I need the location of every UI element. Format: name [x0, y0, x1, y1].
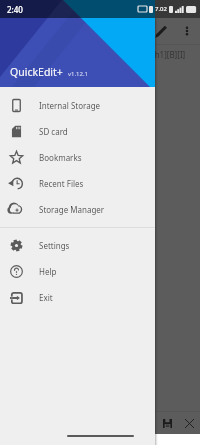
staticText: Bookmarks: [39, 152, 82, 163]
staticText: QuickEdit+: [10, 65, 63, 79]
staticText: Internal Storage: [39, 100, 101, 111]
staticText: [h1][B][I][CODE][ URL ]: [152, 49, 200, 60]
staticText: 2:40: [7, 4, 23, 15]
staticText: Exit: [39, 292, 53, 303]
button[interactable]: SD card: [0, 118, 155, 144]
staticText: SD card: [39, 126, 68, 137]
button[interactable]: Edit: [148, 18, 174, 44]
button[interactable]: More options: [174, 18, 200, 44]
staticText: Settings: [39, 240, 70, 251]
staticText: Help: [39, 266, 57, 277]
button[interactable]: Close: [178, 412, 200, 434]
staticText: Storage Manager: [39, 204, 105, 215]
button[interactable]: Bookmarks: [0, 144, 155, 170]
staticText: 7.02: [155, 5, 167, 13]
button[interactable]: Recent Files: [0, 170, 155, 196]
button[interactable]: Save: [156, 412, 178, 434]
staticText: Recent Files: [39, 178, 84, 189]
button[interactable]: Internal Storage: [0, 92, 155, 118]
button[interactable]: Help: [0, 258, 155, 284]
staticText: v1.12.1: [68, 70, 88, 78]
button[interactable]: Settings: [0, 232, 155, 258]
button[interactable]: Storage Manager: [0, 196, 155, 222]
button[interactable]: Exit: [0, 284, 155, 310]
